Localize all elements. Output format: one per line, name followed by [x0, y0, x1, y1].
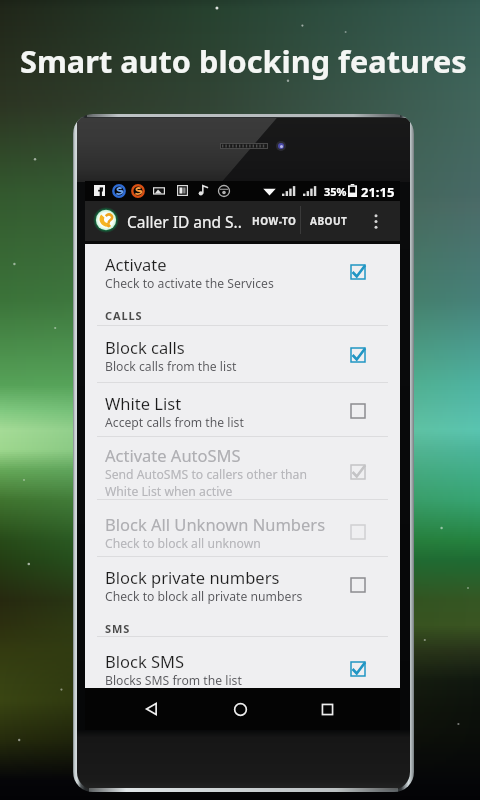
- staticText: SMS: [105, 621, 131, 636]
- staticText: Block calls from the list: [105, 358, 237, 375]
- button[interactable]: ABOUT: [303, 206, 355, 236]
- staticText: Check to block all unknown: [105, 535, 261, 552]
- staticText: 35%: [324, 184, 347, 199]
- button[interactable]: Block All Unknown Numbers: [85, 508, 400, 556]
- staticText: Activate: [105, 253, 167, 275]
- button[interactable]: Block private numbers: [85, 561, 400, 609]
- button[interactable]: Activate: [85, 248, 400, 296]
- button[interactable]: White List: [85, 387, 400, 435]
- staticText: CALLS: [105, 308, 143, 323]
- staticText: 21:15: [361, 183, 395, 201]
- staticText: Accept calls from the list: [105, 414, 244, 431]
- staticText: Block All Unknown Numbers: [105, 513, 326, 535]
- staticText: Check to block all private numbers: [105, 588, 303, 605]
- staticText: Block private numbers: [105, 566, 280, 588]
- staticText: Send AutoSMS to callers other than: [105, 466, 307, 483]
- staticText: HOW-TO: [252, 214, 297, 228]
- staticText: Smart auto blocking features: [20, 40, 467, 82]
- button[interactable]: Recents: [306, 688, 349, 730]
- button[interactable]: Activate AutoSMS: [85, 441, 400, 503]
- staticText: White List when active: [105, 483, 233, 500]
- staticText: Caller ID and S..: [127, 211, 242, 232]
- staticText: ABOUT: [310, 214, 348, 228]
- staticText: Block calls: [105, 336, 185, 358]
- staticText: White List: [105, 392, 182, 414]
- button[interactable]: Block SMS: [85, 645, 400, 693]
- button[interactable]: More options: [362, 208, 389, 235]
- button[interactable]: HOW-TO: [245, 206, 304, 236]
- staticText: Blocks SMS from the list: [105, 672, 242, 689]
- button[interactable]: Home: [219, 688, 262, 730]
- button[interactable]: Back: [130, 688, 173, 730]
- staticText: Block SMS: [105, 650, 185, 672]
- staticText: Activate AutoSMS: [105, 444, 241, 466]
- button[interactable]: Block calls: [85, 331, 400, 379]
- staticText: Check to activate the Services: [105, 275, 274, 292]
